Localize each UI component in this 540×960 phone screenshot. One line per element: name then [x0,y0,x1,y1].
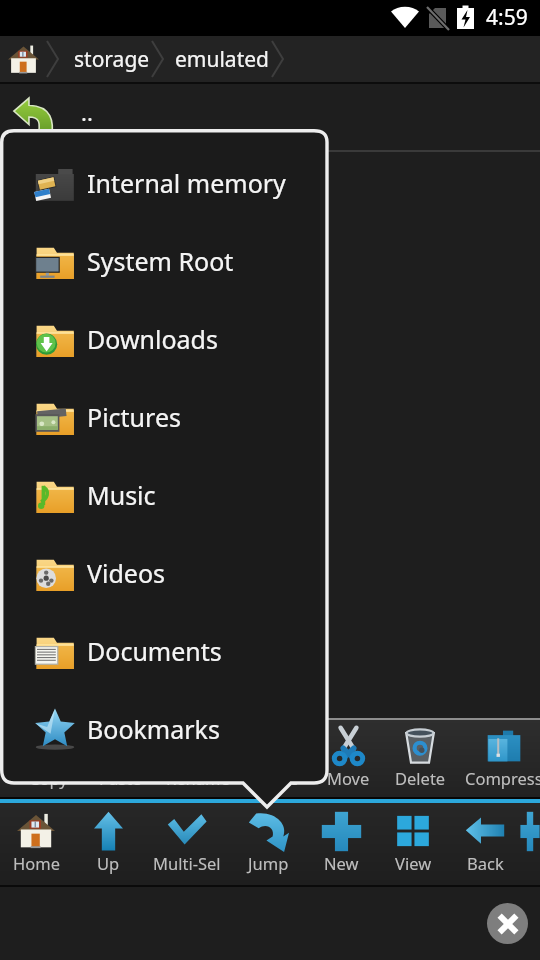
staticText: Videos [87,556,166,590]
staticText: .. [81,97,93,127]
staticText: Delete [395,767,446,789]
staticText: emulated [175,45,269,74]
button[interactable]: Videos [0,534,329,612]
staticText: System Root [87,244,234,278]
staticText: View [395,852,432,874]
button[interactable]: Up one level [0,84,540,150]
staticText: Back [467,852,504,874]
staticText: Home [13,852,60,874]
staticText: Bookmarks [87,712,220,746]
button[interactable]: Move [312,720,384,797]
staticText: Jump [248,852,289,874]
button[interactable]: Home [0,803,72,885]
button[interactable]: emulated [163,37,281,82]
button[interactable]: Pictures [0,378,329,456]
staticText: Up [97,852,120,874]
staticText: storage [74,45,150,74]
staticText: Internal memory [87,166,286,200]
button[interactable]: Copy [12,720,84,797]
button[interactable]: Downloads [0,300,329,378]
staticText: 4:59 [486,3,528,32]
button[interactable]: storage [62,37,162,82]
staticText: Paste [99,767,142,789]
staticText: Downloads [87,322,218,356]
button[interactable]: Share [240,720,312,797]
staticText: Music [87,478,156,512]
button[interactable]: Internal memory [0,144,329,222]
button[interactable]: Music [0,456,329,534]
button[interactable]: Back [450,803,520,885]
staticText: Multi-Sel [153,852,221,874]
button[interactable] [520,803,540,885]
button[interactable]: System Root [0,222,329,300]
staticText: Share [254,767,299,789]
button[interactable]: Up [72,803,144,885]
button[interactable]: Documents [0,612,329,690]
button[interactable]: Close [487,903,528,944]
button[interactable]: Multi-Sel [144,803,230,885]
button[interactable]: Delete [384,720,456,797]
staticText: New [324,852,359,874]
button[interactable]: Paste [84,720,156,797]
button[interactable]: Rename [156,720,240,797]
staticText: Move [327,767,370,789]
button[interactable]: Compress [456,720,540,797]
staticText: Rename [166,767,230,789]
staticText: Compress [465,767,540,789]
staticText: Pictures [87,400,181,434]
button[interactable]: Bookmarks [0,690,329,768]
button[interactable]: Home [4,40,42,78]
button[interactable]: View [376,803,450,885]
button[interactable]: New [306,803,376,885]
other: Up one level [13,96,55,138]
staticText: Copy [29,767,68,789]
staticText: Documents [87,634,222,668]
button[interactable]: Jump [230,803,306,885]
